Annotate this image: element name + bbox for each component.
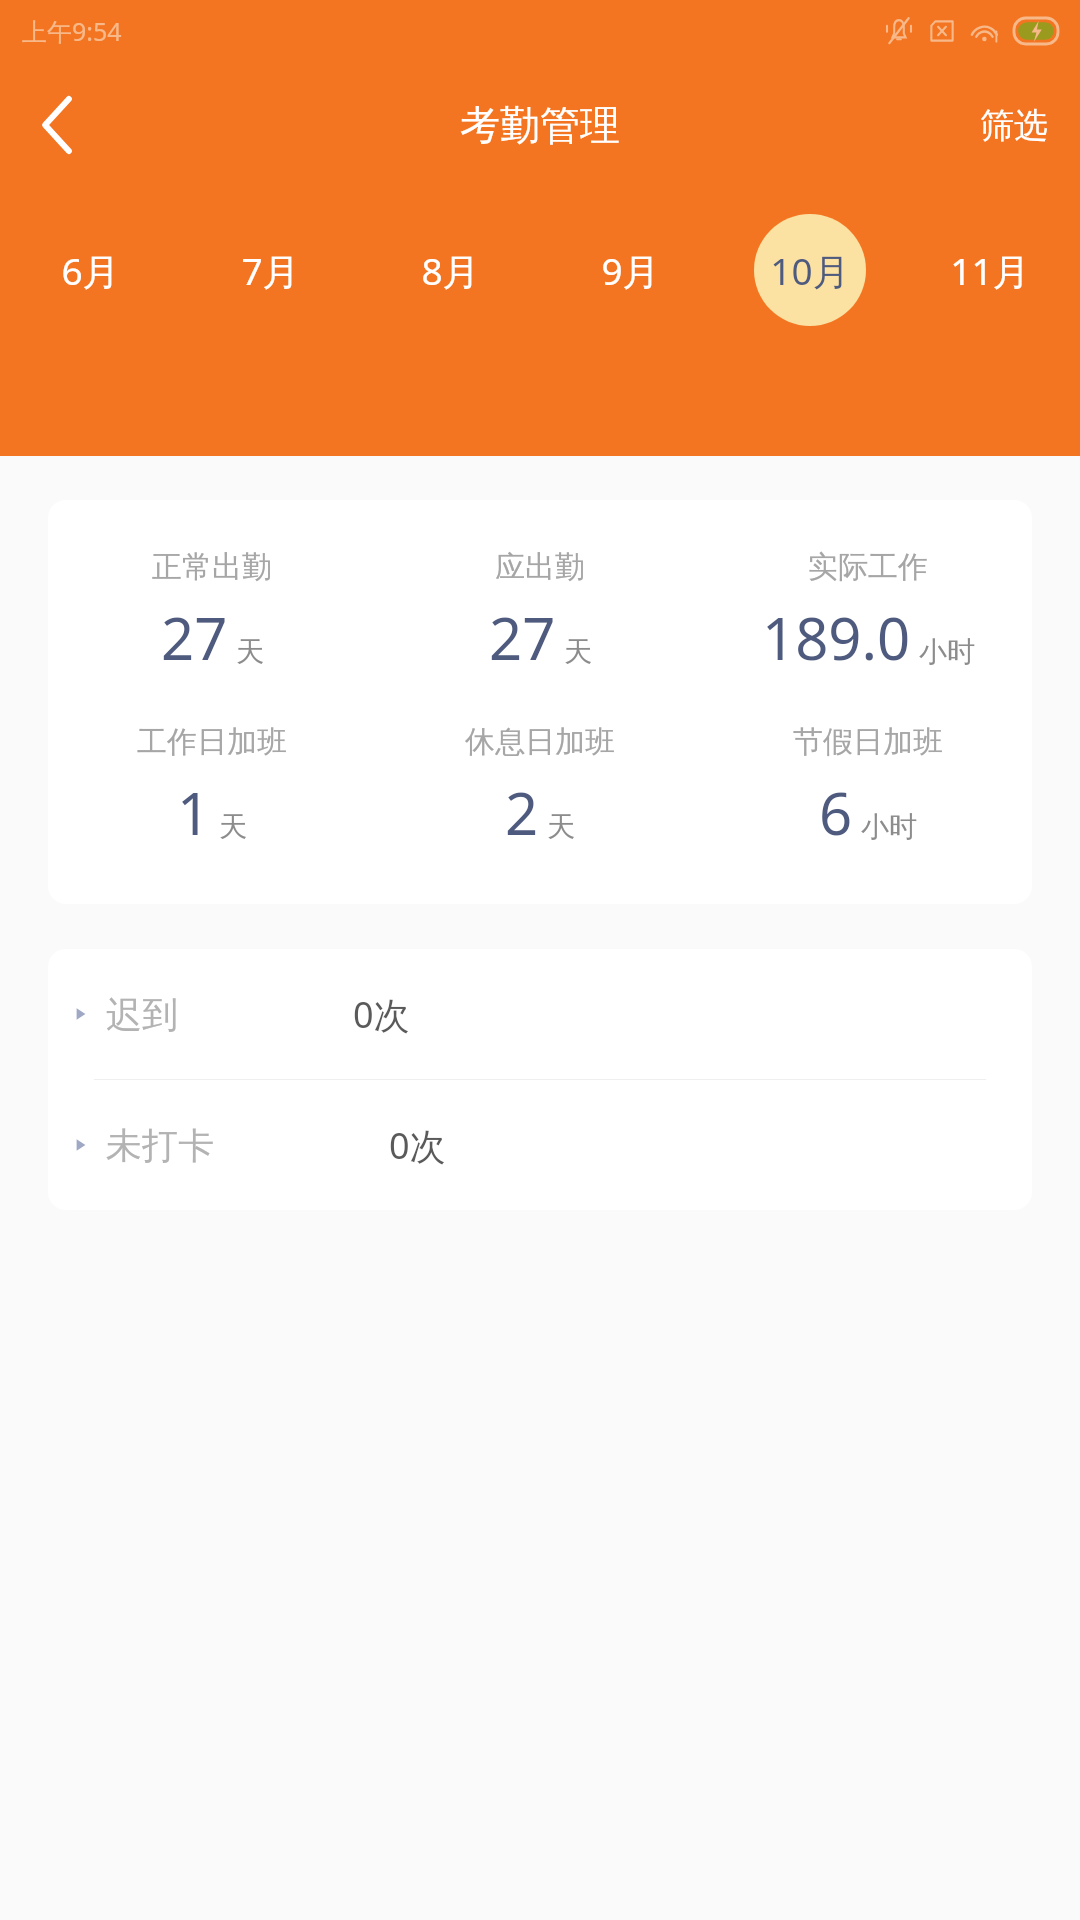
staticText: 小时 [861, 809, 917, 844]
staticText: 天 [219, 809, 247, 844]
button[interactable]: 8月 [360, 214, 540, 326]
staticText: 27 [161, 598, 228, 677]
staticText: 0次 [389, 1121, 446, 1170]
staticText: 9月 [601, 245, 660, 296]
staticText: 天 [236, 634, 264, 669]
button[interactable]: 迟到 [48, 949, 1032, 1079]
button[interactable]: 未打卡 [48, 1080, 1032, 1210]
staticText: 10月 [770, 245, 850, 296]
staticText: 11月 [950, 245, 1030, 296]
staticText: 8月 [421, 245, 480, 296]
staticText: 天 [564, 634, 592, 669]
staticText: 6月 [61, 245, 120, 296]
staticText: 7月 [241, 245, 300, 296]
staticText: 1 [177, 773, 211, 852]
staticText: 小时 [919, 634, 975, 669]
button[interactable]: 11月 [900, 214, 1080, 326]
staticText: 考勤管理 [460, 100, 620, 150]
staticText: 工作日加班 [137, 723, 287, 761]
button[interactable]: 10月 [720, 214, 900, 326]
staticText: 天 [547, 809, 575, 844]
staticText: 应出勤 [495, 548, 585, 586]
staticText: 迟到 [106, 992, 178, 1037]
staticText: 189.0 [762, 598, 911, 677]
staticText: 正常出勤 [152, 548, 272, 586]
button[interactable]: Back [18, 85, 98, 165]
button[interactable]: 7月 [180, 214, 360, 326]
button[interactable]: 筛选 [968, 94, 1060, 157]
staticText: 实际工作 [808, 548, 928, 586]
staticText: 0次 [353, 990, 410, 1039]
staticText: 节假日加班 [793, 723, 943, 761]
staticText: 2 [505, 773, 539, 852]
staticText: 27 [489, 598, 556, 677]
staticText: 上午9:54 [22, 14, 122, 48]
button[interactable]: 6月 [0, 214, 180, 326]
button[interactable]: 9月 [540, 214, 720, 326]
staticText: 未打卡 [106, 1123, 214, 1168]
staticText: 6 [819, 773, 853, 852]
staticText: 筛选 [980, 104, 1048, 147]
staticText: 休息日加班 [465, 723, 615, 761]
